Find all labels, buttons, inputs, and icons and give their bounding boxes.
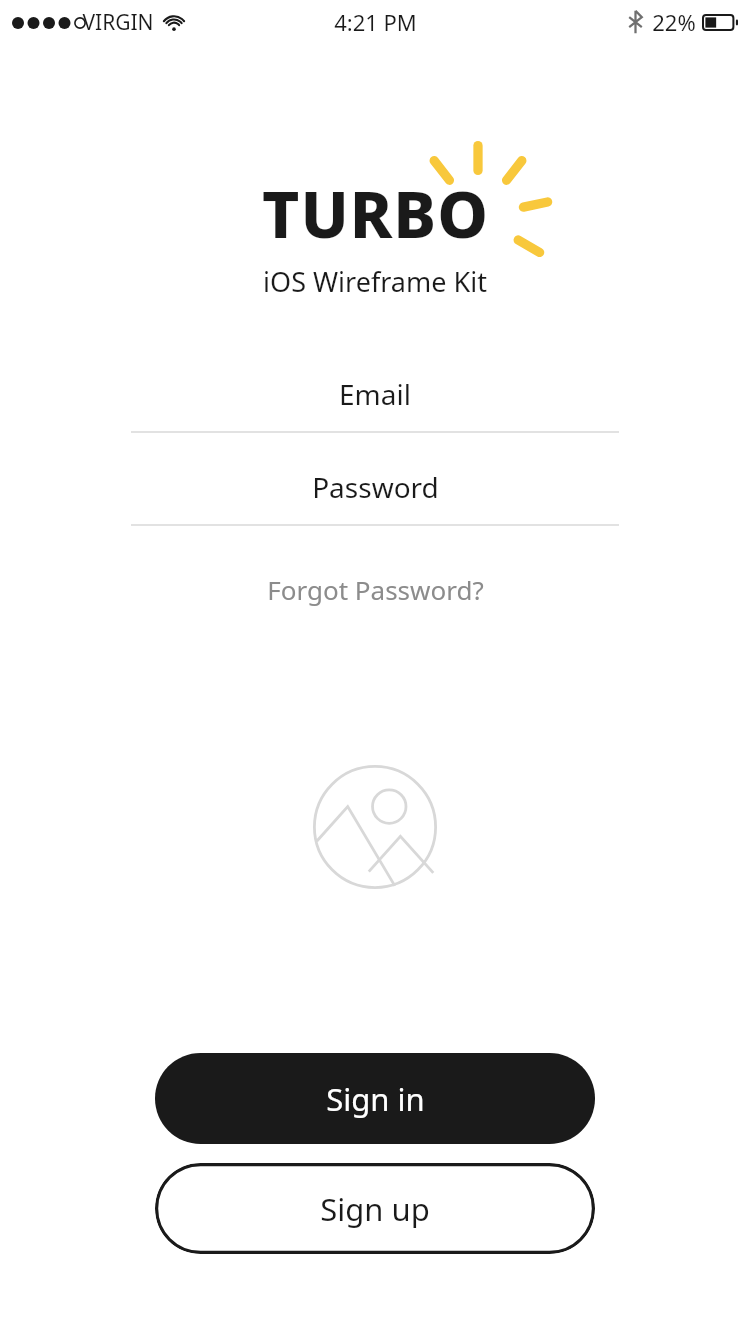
staticText: Sign in xyxy=(326,1078,425,1120)
button[interactable]: Sign in xyxy=(155,1053,595,1144)
staticText: iOS Wireframe Kit xyxy=(263,263,487,293)
staticText: TURBO xyxy=(262,170,489,257)
button[interactable]: Email xyxy=(0,370,750,433)
staticText: Forgot Password? xyxy=(267,572,484,607)
button[interactable]: Password xyxy=(0,463,750,526)
staticText: 22% xyxy=(652,7,696,37)
staticText: VIRGIN xyxy=(82,8,154,37)
staticText: Password xyxy=(312,468,439,506)
button[interactable]: Forgot Password? xyxy=(251,564,500,615)
button[interactable]: Sign up xyxy=(155,1163,595,1254)
staticText: 4:21 PM xyxy=(334,7,417,37)
staticText: Sign up xyxy=(320,1188,430,1230)
staticText: Email xyxy=(339,375,411,413)
other: Image placeholder xyxy=(313,765,437,889)
